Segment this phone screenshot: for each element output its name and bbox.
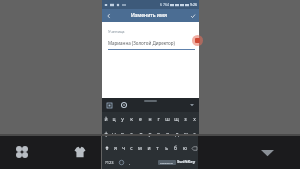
button[interactable]: л bbox=[163, 127, 172, 141]
staticText: Ученица bbox=[108, 29, 125, 34]
button[interactable]: у bbox=[118, 112, 127, 127]
staticText: г bbox=[157, 116, 160, 123]
staticText: щ bbox=[174, 116, 179, 123]
staticText: е bbox=[139, 116, 142, 123]
button[interactable]: ш bbox=[163, 112, 172, 127]
staticText: а bbox=[130, 131, 133, 138]
button[interactable]: ч bbox=[119, 141, 127, 155]
staticText: у bbox=[121, 116, 124, 123]
button[interactable]: м bbox=[135, 141, 144, 155]
button[interactable]: о bbox=[154, 127, 163, 141]
button[interactable]: Save bbox=[186, 9, 199, 22]
button[interactable]: Emoji bbox=[116, 155, 126, 169]
staticText: п bbox=[139, 131, 143, 138]
staticText: Изменить имя bbox=[131, 12, 167, 19]
button[interactable]: Badge bbox=[192, 35, 203, 46]
staticText: б bbox=[174, 145, 177, 152]
button[interactable]: Hide toolbar bbox=[188, 101, 196, 109]
button[interactable]: Backspace bbox=[189, 141, 199, 155]
button[interactable]: Back bbox=[102, 9, 115, 22]
staticText: 9:26 bbox=[190, 2, 197, 7]
staticText: з bbox=[184, 116, 187, 123]
staticText: Марианна (Золотой Директор) bbox=[108, 40, 175, 46]
staticText: ь bbox=[165, 145, 168, 152]
staticText: х bbox=[193, 116, 196, 123]
staticText: м bbox=[138, 145, 142, 152]
staticText: я bbox=[114, 145, 117, 152]
staticText: ы bbox=[112, 131, 116, 138]
button[interactable]: е bbox=[136, 112, 145, 127]
button[interactable]: я bbox=[111, 141, 119, 155]
staticText: ж bbox=[184, 131, 188, 138]
button[interactable]: ж bbox=[181, 127, 190, 141]
staticText: ш bbox=[165, 116, 170, 123]
button[interactable]: ?123 bbox=[102, 155, 116, 169]
staticText: и bbox=[147, 145, 151, 152]
button[interactable]: ц bbox=[110, 112, 118, 127]
staticText: й bbox=[104, 116, 108, 123]
staticText: с bbox=[130, 145, 133, 152]
button[interactable]: ь bbox=[162, 141, 171, 155]
staticText: ф bbox=[104, 131, 108, 138]
button[interactable]: а bbox=[127, 127, 136, 141]
staticText: н bbox=[148, 116, 152, 123]
button[interactable]: ю bbox=[180, 141, 189, 155]
button[interactable]: к bbox=[127, 112, 136, 127]
button[interactable]: р bbox=[145, 127, 154, 141]
button[interactable]: Shift bbox=[102, 141, 111, 155]
staticText: Powered by bbox=[160, 161, 174, 164]
staticText: , bbox=[129, 160, 131, 165]
button[interactable]: д bbox=[172, 127, 181, 141]
button[interactable]: й bbox=[102, 112, 110, 127]
button[interactable]: н bbox=[145, 112, 154, 127]
button[interactable]: , bbox=[126, 155, 134, 169]
button[interactable]: Settings bbox=[120, 101, 128, 109]
staticText: о bbox=[157, 131, 160, 138]
button[interactable]: Collapse bbox=[257, 142, 277, 162]
staticText: ц bbox=[112, 116, 116, 123]
button[interactable]: г bbox=[154, 112, 163, 127]
staticText: в bbox=[121, 131, 124, 138]
staticText: р bbox=[148, 131, 152, 138]
button[interactable]: Wardrobe bbox=[71, 143, 89, 161]
staticText: SwiftKey bbox=[177, 159, 196, 165]
staticText: э bbox=[193, 131, 196, 138]
staticText: ю bbox=[183, 145, 187, 152]
button[interactable]: х bbox=[190, 112, 199, 127]
staticText: т bbox=[156, 145, 159, 152]
button[interactable]: щ bbox=[172, 112, 181, 127]
staticText: ?123 bbox=[105, 160, 114, 165]
staticText: д bbox=[175, 131, 179, 138]
button[interactable]: з bbox=[181, 112, 190, 127]
button[interactable]: б bbox=[171, 141, 180, 155]
button[interactable]: ы bbox=[110, 127, 118, 141]
button[interactable]: ф bbox=[102, 127, 110, 141]
button[interactable]: Марианна (Золотой Директор) bbox=[108, 40, 195, 46]
button[interactable]: э bbox=[190, 127, 199, 141]
button[interactable]: и bbox=[144, 141, 153, 155]
button[interactable]: Clipboard bbox=[105, 101, 113, 109]
staticText: к bbox=[130, 116, 133, 123]
staticText: ч bbox=[122, 145, 125, 152]
staticText: л bbox=[166, 131, 169, 138]
button[interactable]: в bbox=[118, 127, 127, 141]
button[interactable]: с bbox=[127, 141, 135, 155]
button[interactable]: Apps bbox=[13, 143, 31, 161]
staticText: 6 764 bbox=[160, 2, 169, 7]
button[interactable]: т bbox=[153, 141, 162, 155]
button[interactable]: п bbox=[136, 127, 145, 141]
